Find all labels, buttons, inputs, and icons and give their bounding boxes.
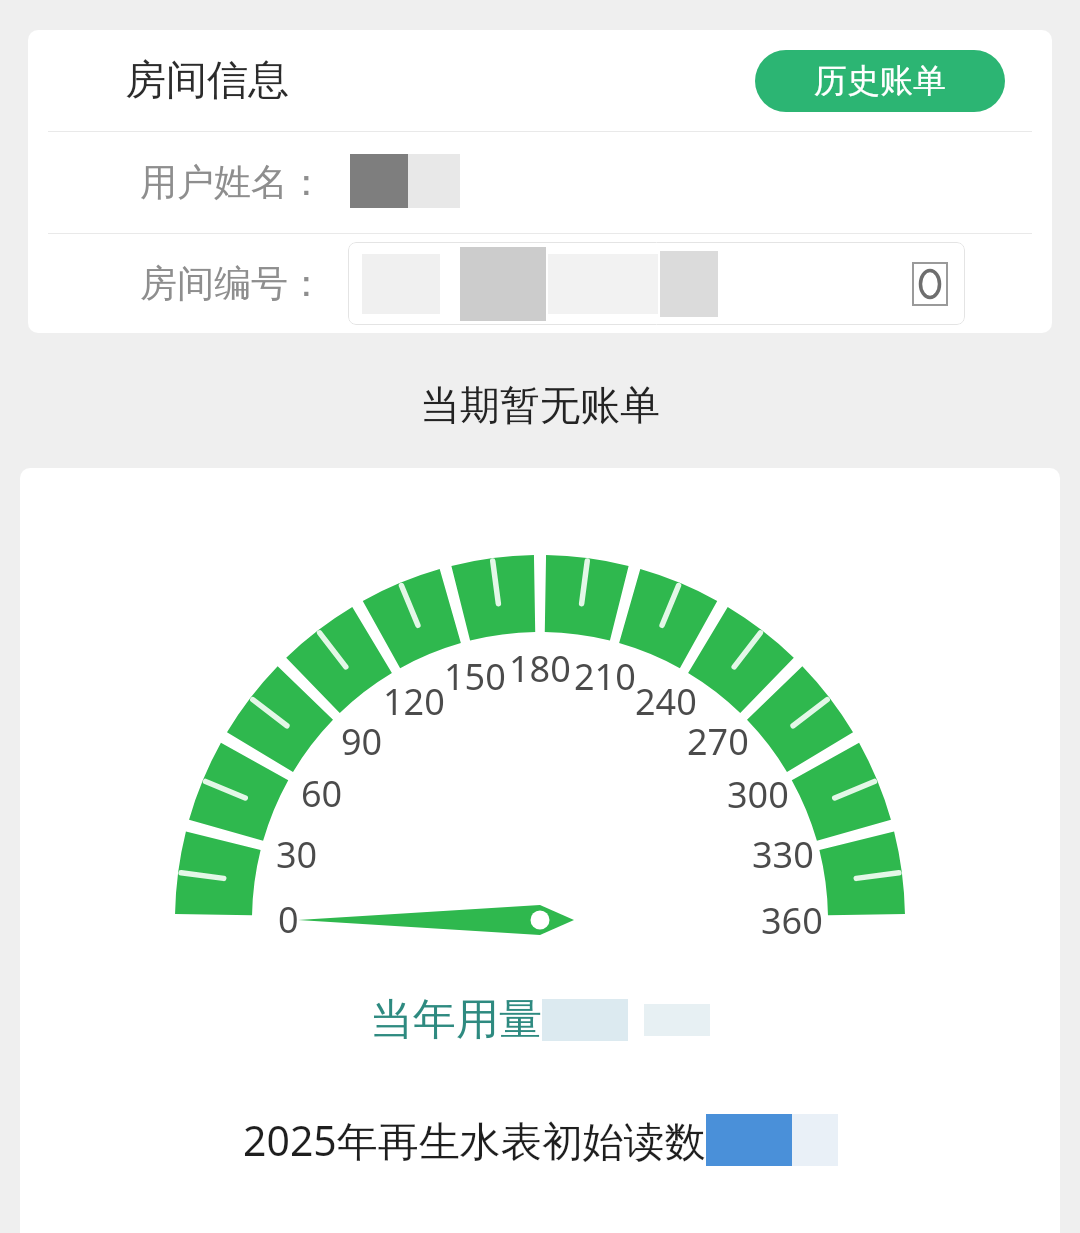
staticText: 当期暂无账单	[0, 380, 1080, 430]
staticText: 150	[444, 652, 506, 701]
button[interactable]: Select room number	[913, 263, 947, 305]
staticText: 0	[278, 895, 299, 944]
staticText: 历史账单	[814, 60, 946, 102]
staticText: 30	[276, 830, 318, 879]
staticText: 90	[341, 717, 383, 766]
staticText: 210	[574, 652, 636, 701]
staticText: 270	[687, 717, 749, 766]
staticText: 120	[383, 677, 445, 726]
staticText: 房间信息	[125, 55, 289, 107]
staticText: 300	[727, 770, 789, 819]
button[interactable]: 历史账单	[755, 50, 1005, 112]
staticText: 240	[635, 677, 697, 726]
staticText: 2025年再生水表初始读数	[243, 1112, 706, 1168]
staticText: 60	[301, 769, 343, 818]
staticText: 当年用量	[370, 993, 542, 1047]
button[interactable]: 用户姓名：	[28, 132, 1052, 233]
staticText: 330	[752, 830, 814, 879]
staticText: 房间编号：	[140, 260, 325, 307]
staticText: 用户姓名：	[140, 159, 325, 206]
button[interactable]: Select room number	[348, 242, 965, 325]
staticText: 180	[509, 644, 571, 693]
staticText: 360	[761, 896, 823, 945]
